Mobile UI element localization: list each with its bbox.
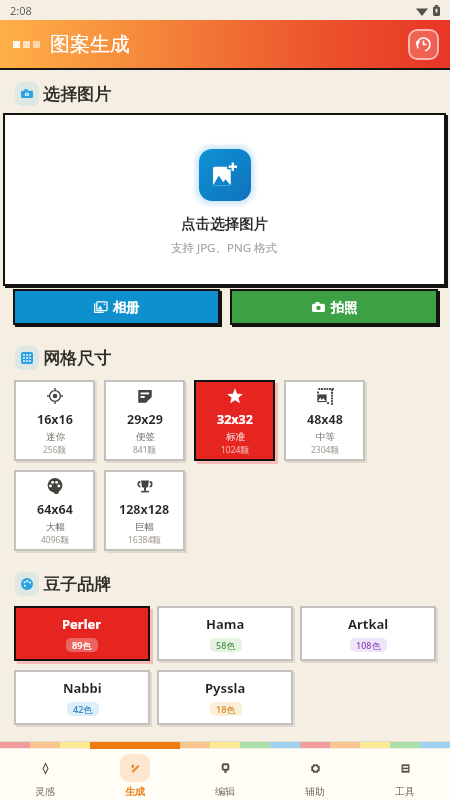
staticText: Perler bbox=[62, 615, 102, 633]
staticText: 点击选择图片 bbox=[181, 215, 268, 233]
button[interactable]: 32x32 bbox=[196, 382, 273, 459]
button[interactable]: 辅助 bbox=[270, 749, 360, 800]
staticText: 58色 bbox=[216, 639, 236, 651]
button[interactable]: 工具 bbox=[360, 749, 450, 800]
button[interactable]: 相册 bbox=[15, 291, 218, 323]
button[interactable]: 29x29 bbox=[106, 382, 183, 459]
staticText: 生成 bbox=[125, 785, 145, 798]
staticText: 图案生成 bbox=[50, 32, 130, 57]
staticText: 89色 bbox=[72, 639, 92, 651]
staticText: 支持 JPG、PNG 格式 bbox=[171, 240, 278, 256]
button[interactable]: Pyssla bbox=[159, 672, 291, 723]
staticText: 29x29 bbox=[127, 411, 163, 428]
button[interactable]: 编辑 bbox=[180, 749, 270, 800]
staticText: 1024颗 bbox=[221, 444, 249, 456]
staticText: 4096颗 bbox=[41, 534, 69, 546]
staticText: 42色 bbox=[73, 703, 93, 715]
staticText: 相册 bbox=[113, 299, 139, 315]
staticText: Nabbi bbox=[63, 679, 102, 697]
staticText: 108色 bbox=[356, 639, 381, 651]
staticText: 64x64 bbox=[37, 501, 73, 518]
staticText: 便签 bbox=[136, 431, 155, 443]
button[interactable]: 灵感 bbox=[0, 749, 90, 800]
staticText: Pyssla bbox=[205, 679, 246, 697]
staticText: 标准 bbox=[226, 431, 245, 443]
button[interactable]: 生成 bbox=[90, 749, 180, 800]
staticText: 256颗 bbox=[43, 444, 67, 456]
staticText: 2304颗 bbox=[311, 444, 339, 456]
staticText: Hama bbox=[206, 615, 245, 633]
button[interactable]: History bbox=[408, 29, 439, 60]
staticText: 18色 bbox=[216, 703, 236, 715]
staticText: 灵感 bbox=[35, 785, 55, 798]
staticText: 工具 bbox=[395, 785, 415, 798]
staticText: 16x16 bbox=[37, 411, 73, 428]
button[interactable]: Perler bbox=[16, 608, 148, 659]
staticText: 选择图片 bbox=[43, 84, 111, 105]
staticText: 迷你 bbox=[46, 431, 65, 443]
button[interactable]: 拍照 bbox=[232, 291, 436, 323]
button[interactable]: 128x128 bbox=[106, 472, 183, 549]
staticText: 编辑 bbox=[215, 785, 235, 798]
button[interactable]: 16x16 bbox=[16, 382, 93, 459]
button[interactable]: Nabbi bbox=[16, 672, 148, 723]
staticText: 巨幅 bbox=[135, 521, 154, 533]
staticText: 841颗 bbox=[133, 444, 157, 456]
staticText: 豆子品牌 bbox=[43, 574, 111, 595]
staticText: 辅助 bbox=[305, 785, 325, 798]
staticText: 大幅 bbox=[46, 521, 65, 533]
staticText: 32x32 bbox=[217, 411, 253, 428]
button[interactable]: Hama bbox=[159, 608, 291, 659]
staticText: 中等 bbox=[316, 431, 335, 443]
staticText: 网格尺寸 bbox=[43, 348, 111, 369]
staticText: 128x128 bbox=[119, 501, 170, 518]
button[interactable]: 48x48 bbox=[286, 382, 363, 459]
staticText: 拍照 bbox=[331, 299, 357, 315]
button[interactable]: 64x64 bbox=[16, 472, 93, 549]
staticText: Artkal bbox=[348, 615, 389, 633]
staticText: 48x48 bbox=[307, 411, 343, 428]
button[interactable]: 点击选择图片 bbox=[5, 115, 444, 284]
staticText: 2:08 bbox=[10, 3, 32, 18]
staticText: 16384颗 bbox=[128, 534, 161, 546]
button[interactable]: Artkal bbox=[302, 608, 434, 659]
